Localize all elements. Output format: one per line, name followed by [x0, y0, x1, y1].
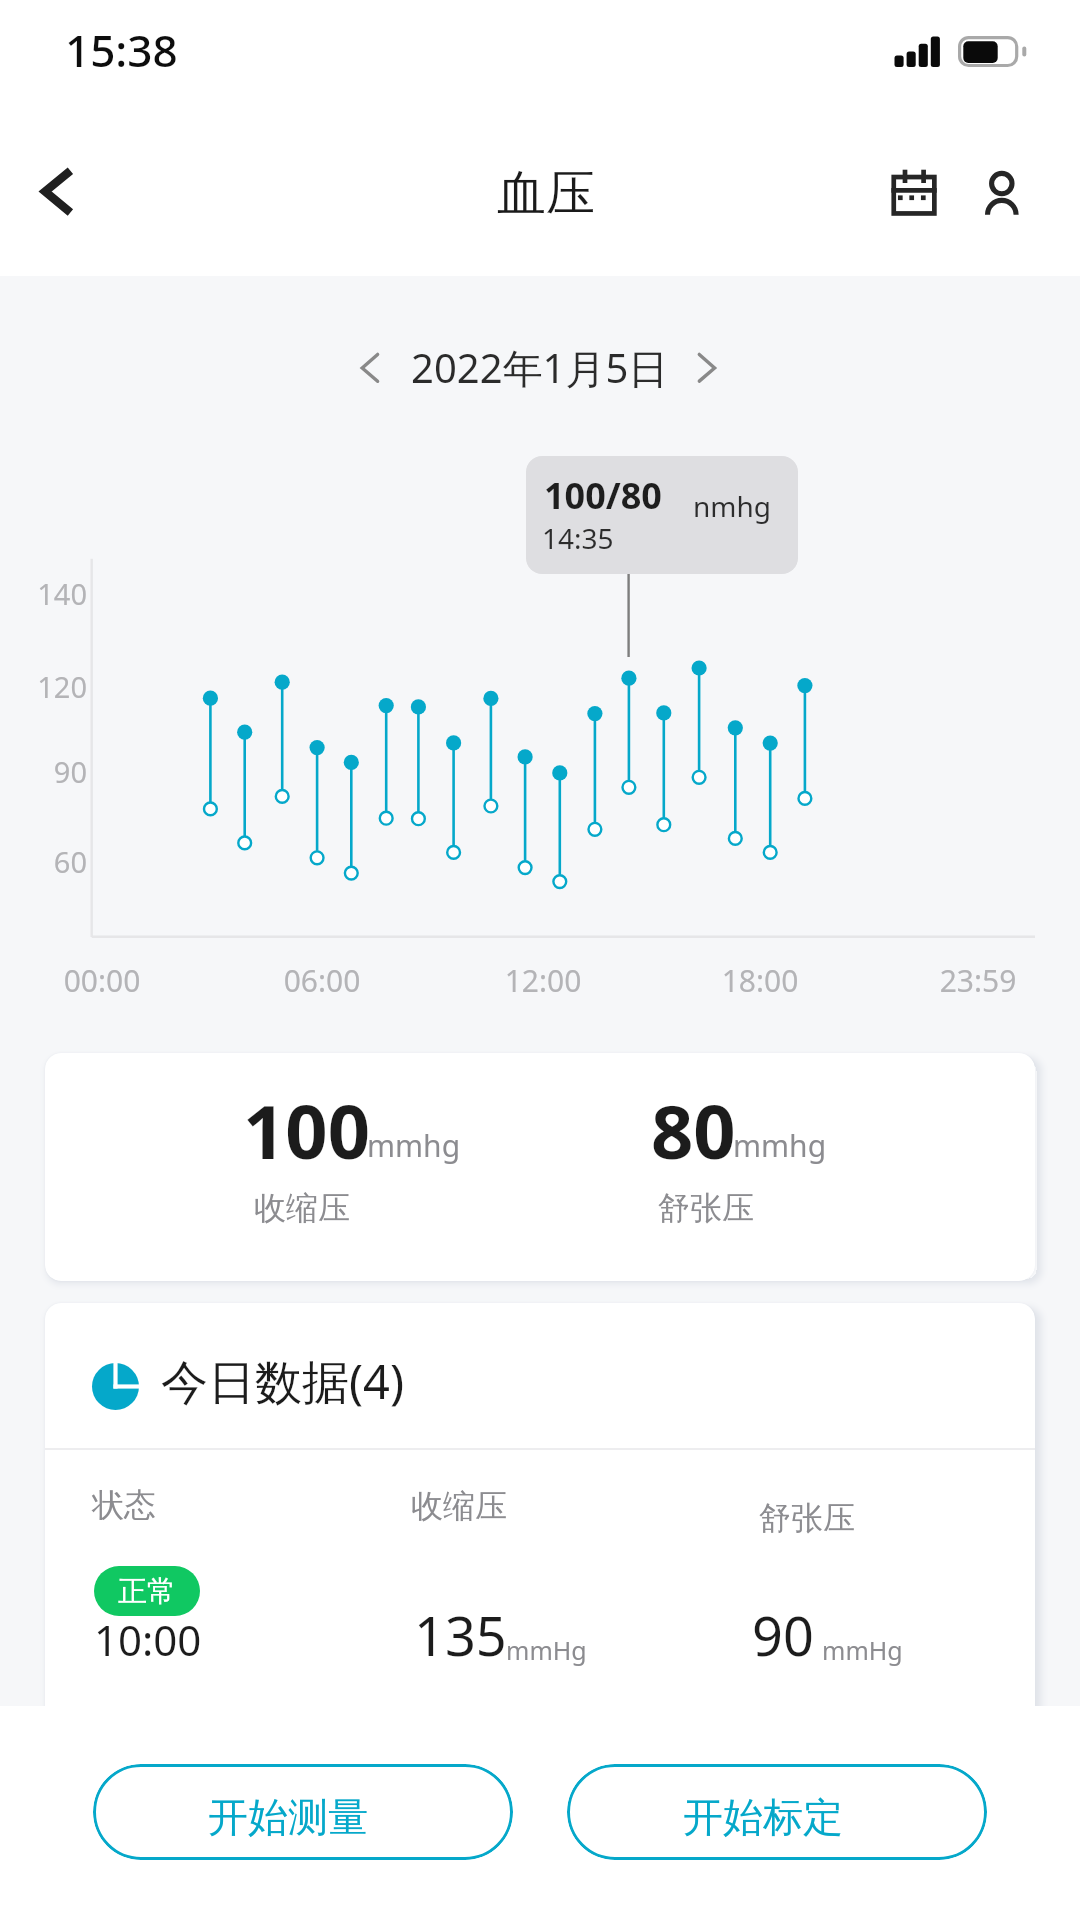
- staticText: 23:59: [898, 960, 1058, 1001]
- staticText: 60: [0, 842, 87, 881]
- staticText: 开始测量: [208, 1792, 368, 1842]
- staticText: 开始标定: [683, 1792, 843, 1842]
- staticText: 14:35: [542, 519, 614, 557]
- button[interactable]: Previous day: [342, 338, 398, 398]
- button[interactable]: 开始测量: [93, 1764, 513, 1860]
- staticText: 收缩压: [411, 1486, 507, 1526]
- staticText: 90: [752, 1598, 814, 1672]
- staticText: 120: [0, 667, 87, 706]
- staticText: 血压: [497, 163, 595, 225]
- button[interactable]: Calendar: [870, 149, 958, 237]
- staticText: 00:00: [22, 960, 182, 1001]
- staticText: 舒张压: [759, 1498, 855, 1538]
- staticText: 收缩压: [254, 1188, 350, 1228]
- staticText: 100/80: [544, 471, 662, 520]
- button[interactable]: Reading 10:00 normal 135 / 90 mmHg: [45, 1548, 1035, 1688]
- staticText: 舒张压: [658, 1188, 754, 1228]
- staticText: mmHg: [506, 1633, 587, 1667]
- button[interactable]: Profile: [958, 149, 1046, 237]
- staticText: 状态: [92, 1485, 156, 1525]
- staticText: mmHg: [822, 1633, 903, 1667]
- staticText: 100: [243, 1080, 370, 1181]
- staticText: 正常: [118, 1573, 176, 1610]
- button[interactable]: [526, 456, 798, 574]
- staticText: 135: [414, 1598, 507, 1672]
- button[interactable]: Next day: [679, 338, 735, 398]
- staticText: 10:00: [94, 1611, 202, 1668]
- button[interactable]: [45, 1053, 1035, 1281]
- staticText: 15:38: [65, 20, 178, 80]
- staticText: 90: [0, 752, 87, 791]
- staticText: mmhg: [733, 1125, 827, 1166]
- staticText: mmhg: [367, 1125, 461, 1166]
- staticText: 140: [0, 574, 87, 613]
- staticText: 12:00: [463, 960, 623, 1001]
- button[interactable]: Back: [4, 148, 92, 236]
- button[interactable]: 开始标定: [567, 1764, 987, 1860]
- staticText: 今日数据(4): [161, 1349, 405, 1413]
- staticText: nmhg: [693, 487, 772, 525]
- staticText: 2022年1月5日: [411, 340, 669, 395]
- staticText: 80: [651, 1080, 736, 1181]
- staticText: 18:00: [680, 960, 840, 1001]
- staticText: 06:00: [242, 960, 402, 1001]
